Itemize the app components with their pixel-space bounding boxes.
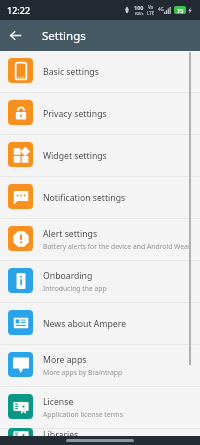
staticText: News about Ampere [43,318,127,330]
staticText: Application license terms [43,410,123,419]
staticText: 12:22 [7,4,31,16]
staticText: Widget settings [43,150,107,162]
staticText: Privacy settings [43,108,107,120]
staticText: 4G [158,6,164,12]
staticText: Notification settings [43,192,126,204]
staticText: Settings [42,28,86,44]
staticText: License [43,396,74,408]
button[interactable]: Widget settings [0,135,200,177]
staticText: Basic settings [43,66,99,78]
button[interactable]: Basic settings [0,51,200,93]
staticText: KB/s [135,11,144,16]
button[interactable]: Privacy settings [0,93,200,135]
button[interactable]: More apps [0,345,200,387]
staticText: 100 [134,4,144,11]
staticText: Onboarding [43,270,93,282]
button[interactable]: News about Ampere [0,303,200,345]
button[interactable]: Back [0,20,31,51]
staticText: Libraries [43,429,79,441]
staticText: More apps by Braintrapp [43,368,123,377]
staticText: 75 [177,7,184,14]
staticText: Vo [148,4,154,10]
button[interactable]: Onboarding [0,261,200,303]
staticText: Introducing the app [43,284,107,293]
button[interactable]: Alert settings [0,219,200,261]
staticText: More apps [43,354,87,366]
staticText: LTE [147,10,155,16]
button[interactable]: Libraries [0,429,200,445]
staticText: Alert settings [43,228,98,240]
staticText: Battery alerts for the device and Androi… [43,242,191,251]
button[interactable]: License [0,387,200,429]
button[interactable]: Notification settings [0,177,200,219]
